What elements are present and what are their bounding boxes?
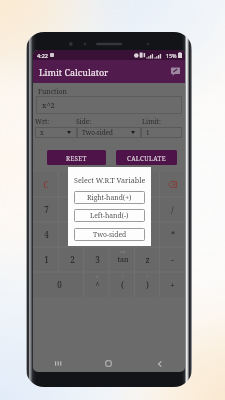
button[interactable]: Home [83,355,134,372]
staticText: Right-hand(+) [87,193,132,202]
staticText: 7 [44,204,49,215]
staticText: Two-sided [93,230,127,239]
button[interactable]: x [135,197,160,222]
staticText: tan [117,255,129,265]
staticText: * [171,229,175,240]
button[interactable]: 4 [33,222,59,247]
button[interactable]: cot [110,247,135,272]
staticText: ( [121,279,124,290]
button[interactable]: Back [134,355,185,372]
staticText: asin [119,199,127,204]
staticText: Wrt: [35,117,50,126]
button[interactable]: 3 [85,247,110,272]
staticText: 4:22 [37,52,48,59]
staticText: 8 [70,204,75,215]
button[interactable] [59,172,85,197]
button[interactable]: y [135,222,160,247]
button[interactable]: Left-hand(-) [74,209,145,222]
button[interactable] [135,172,160,197]
staticText: ^ [95,279,100,290]
staticText: RESET [66,154,87,162]
button[interactable]: acos [110,222,135,247]
staticText: 5 [70,229,75,240]
button[interactable]: Two-sided [74,228,145,241]
staticText: 9 [95,204,100,215]
button[interactable]: 9 [85,197,110,222]
button[interactable]: 2 [59,247,85,272]
staticText: x [40,128,44,137]
button[interactable]: | [110,272,135,297]
staticText: x^2 [42,100,55,110]
staticText: 1 [146,128,150,137]
button[interactable]: 5 [59,222,85,247]
button[interactable]: 6 [85,222,110,247]
staticText: cot [120,249,126,254]
staticText: 2 [70,254,75,265]
staticText: C [43,179,49,190]
staticText: sin [117,205,128,215]
button[interactable]: RESET [47,150,106,165]
button[interactable]: Feedback [171,67,180,76]
staticText: / [171,204,174,215]
button[interactable]: asin [110,197,135,222]
staticText: Two-sided [82,128,113,137]
button[interactable]: Right-hand(+) [74,191,145,204]
staticText: Limit Calculator [39,66,109,78]
staticText: 15% [166,52,177,59]
button[interactable] [110,172,135,197]
staticText: | [146,274,149,279]
button[interactable]: √ [85,272,110,297]
button[interactable]: C [33,172,59,197]
button[interactable]: z [135,247,160,272]
button[interactable]: CALCULATE [116,150,177,165]
button[interactable]: 7 [33,197,59,222]
staticText: √ [96,274,99,279]
staticText: Left-hand(-) [90,211,129,220]
staticText: Side: [76,117,92,126]
staticText: Limit: [142,117,161,126]
staticText: Function [38,87,67,96]
staticText: | [121,274,124,279]
button[interactable]: Two-sided [77,127,141,138]
button[interactable]: 8 [59,197,85,222]
staticText: cos [117,230,128,240]
staticText: 1 [44,254,49,265]
staticText: - [171,254,174,265]
staticText: 3 [95,254,100,265]
button[interactable]: x [35,127,77,138]
button[interactable]: + [160,272,185,297]
button[interactable]: | [135,272,160,297]
staticText: 4 [44,229,49,240]
staticText: acos [118,224,127,229]
button[interactable]: Recent apps [33,355,83,372]
staticText: ) [146,279,149,290]
button[interactable]: / [160,197,185,222]
staticText: z [145,254,150,265]
staticText: Select W.R.T Variable [74,175,146,185]
button[interactable] [160,172,185,197]
button[interactable]: 1 [141,127,182,138]
staticText: 0 [57,279,62,290]
button[interactable]: 0 [33,272,85,297]
button[interactable]: 1 [33,247,59,272]
button[interactable] [85,172,110,197]
button[interactable]: x^2 [36,96,182,114]
staticText: + [170,279,175,290]
staticText: CALCULATE [127,154,166,162]
button[interactable]: * [160,222,185,247]
staticText: 6 [95,229,100,240]
